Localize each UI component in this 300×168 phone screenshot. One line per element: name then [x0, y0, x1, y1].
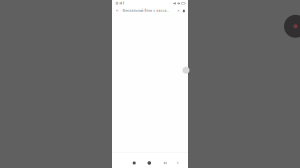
button[interactable]: Bookmarks: [163, 161, 167, 165]
staticText: Фискальный блок с кассами: [122, 9, 169, 13]
button[interactable]: Home: [147, 161, 151, 165]
staticText: 9:41: [115, 1, 124, 6]
button[interactable]: Close: [177, 9, 180, 12]
button[interactable]: More: [176, 161, 180, 165]
button[interactable]: Tabs: [133, 161, 136, 165]
button[interactable]: Voice search: [182, 9, 185, 13]
button[interactable]: Back: [116, 9, 119, 12]
